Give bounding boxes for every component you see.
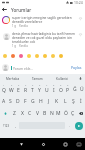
staticText: 1 bbox=[3, 84, 5, 87]
button[interactable]: 6 bbox=[36, 83, 43, 95]
button[interactable]: deniz.yilmaz hazirladiginiz bu tarifi he… bbox=[0, 30, 85, 48]
staticText: Merhaba bbox=[6, 77, 20, 81]
button[interactable]: Back bbox=[0, 5, 9, 14]
button[interactable]: Send bbox=[75, 122, 83, 130]
button[interactable]: , bbox=[12, 119, 18, 132]
staticText: 9 bbox=[60, 84, 62, 87]
staticText: Z bbox=[13, 110, 16, 117]
button[interactable]: K bbox=[53, 95, 61, 107]
button[interactable]: F bbox=[21, 95, 29, 107]
staticText: F bbox=[24, 98, 27, 105]
button[interactable]: H bbox=[37, 95, 45, 107]
button[interactable]: M bbox=[55, 107, 62, 119]
staticText: D bbox=[16, 98, 20, 105]
button[interactable]: A bbox=[0, 95, 7, 107]
staticText: R bbox=[24, 87, 28, 94]
button[interactable]: 8 bbox=[50, 83, 57, 95]
staticText: U bbox=[45, 87, 49, 94]
staticText: E bbox=[17, 87, 20, 94]
button[interactable]: Emoji bbox=[25, 52, 33, 60]
staticText: Ğ bbox=[73, 86, 77, 93]
button[interactable]: 0 bbox=[64, 83, 71, 95]
button[interactable]: Emoji bbox=[41, 52, 49, 60]
button[interactable]: 3 bbox=[15, 83, 22, 95]
button[interactable]: Emoji bbox=[17, 52, 25, 60]
staticText: J bbox=[48, 98, 50, 105]
button[interactable]: Backspace bbox=[76, 107, 85, 119]
button[interactable]: 4 bbox=[22, 83, 29, 95]
button[interactable]: Emoji bbox=[9, 52, 17, 60]
button[interactable]: Like bbox=[78, 32, 83, 37]
button[interactable]: G bbox=[29, 95, 37, 107]
button[interactable]: Ü bbox=[78, 83, 85, 95]
button[interactable]: 2 bbox=[8, 83, 15, 95]
button[interactable]: Merhaba bbox=[0, 74, 25, 83]
button[interactable]: Switch keyboard bbox=[74, 140, 83, 149]
button[interactable]: Emoji bbox=[57, 52, 65, 60]
button[interactable]: Paylas bbox=[70, 64, 83, 71]
button[interactable]: Recents bbox=[61, 140, 70, 149]
staticText: O bbox=[59, 87, 63, 94]
button[interactable]: 5 bbox=[29, 83, 36, 95]
staticText: I bbox=[53, 87, 55, 94]
button[interactable]: Emoji bbox=[49, 52, 57, 60]
button[interactable]: N bbox=[48, 107, 55, 119]
button[interactable]: V bbox=[34, 107, 41, 119]
staticText: super icerigin emegine saglik gercekten … bbox=[12, 16, 72, 24]
button[interactable]: Like bbox=[78, 16, 83, 21]
staticText: N bbox=[50, 110, 54, 117]
button[interactable]: Emoji bbox=[33, 52, 41, 60]
button[interactable]: J bbox=[45, 95, 53, 107]
button[interactable]: Ş bbox=[69, 95, 77, 107]
button[interactable]: X bbox=[18, 107, 26, 119]
staticText: V bbox=[36, 110, 40, 117]
staticText: 2 bbox=[11, 84, 13, 87]
button[interactable]: Kullanici bbox=[50, 74, 75, 83]
button[interactable]: Emoji bbox=[1, 52, 9, 60]
button[interactable]: 9 bbox=[57, 83, 64, 95]
staticText: 5 bbox=[32, 84, 34, 87]
staticText: 3 bbox=[18, 84, 20, 87]
staticText: 0 bbox=[67, 84, 69, 87]
staticText: W bbox=[9, 87, 14, 94]
button[interactable]: 1 bbox=[0, 83, 8, 95]
staticText: Paylas bbox=[71, 65, 82, 70]
staticText: Ş bbox=[72, 98, 75, 105]
staticText: Kullanici bbox=[56, 77, 69, 81]
button[interactable]: ?123 bbox=[0, 119, 12, 132]
staticText: Ç bbox=[71, 110, 75, 117]
button[interactable]: Shift bbox=[0, 107, 10, 119]
staticText: 4 bbox=[25, 84, 27, 87]
button[interactable]: Ğ bbox=[71, 83, 78, 95]
button[interactable]: B bbox=[41, 107, 48, 119]
button[interactable]: L bbox=[61, 95, 69, 107]
button[interactable]: Ö bbox=[62, 107, 69, 119]
staticText: 7 bbox=[46, 84, 48, 87]
staticText: . bbox=[69, 123, 70, 128]
staticText: P bbox=[66, 87, 70, 94]
staticText: Ü bbox=[80, 86, 84, 93]
button[interactable]: C bbox=[26, 107, 34, 119]
staticText: , bbox=[15, 123, 16, 128]
staticText: 8 bbox=[53, 84, 55, 87]
staticText: G bbox=[31, 98, 35, 105]
button[interactable]: İ bbox=[77, 95, 85, 107]
button[interactable]: D bbox=[14, 95, 21, 107]
button[interactable]: Voice input bbox=[75, 74, 85, 83]
button[interactable]: Home bbox=[39, 140, 48, 149]
button[interactable]: super icerigin emegine saglik gercekten … bbox=[0, 14, 85, 28]
button[interactable]: Tamam bbox=[25, 74, 50, 83]
button[interactable]: S bbox=[7, 95, 14, 107]
staticText: H bbox=[39, 98, 43, 105]
button[interactable]: Z bbox=[10, 107, 18, 119]
button[interactable]: Hide keyboard bbox=[17, 140, 26, 149]
button[interactable]: Ç bbox=[69, 107, 76, 119]
button[interactable]: 7 bbox=[43, 83, 50, 95]
staticText: X bbox=[21, 110, 24, 117]
staticText: A bbox=[2, 98, 6, 105]
staticText: Ö bbox=[64, 110, 68, 117]
staticText: 6 bbox=[39, 84, 41, 87]
staticText: Tamam bbox=[32, 77, 43, 81]
